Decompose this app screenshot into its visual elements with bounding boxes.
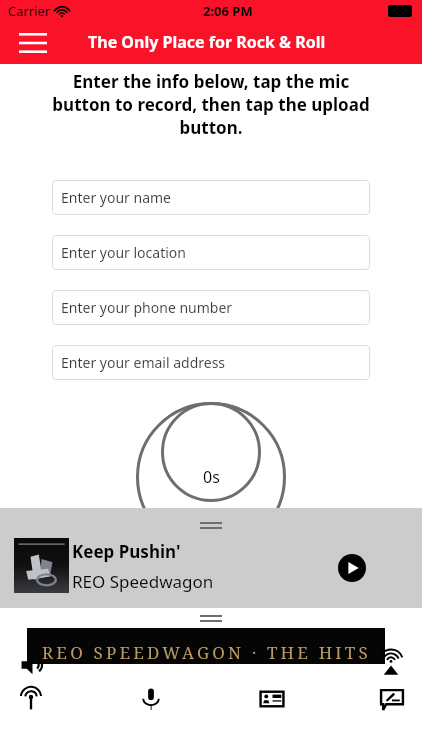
staticText: 0s bbox=[203, 466, 220, 488]
button[interactable]: Compose bbox=[375, 682, 409, 716]
button[interactable]: Record bbox=[134, 682, 168, 716]
staticText: REO Speedwagon bbox=[72, 570, 214, 593]
button[interactable]: Broadcast bbox=[14, 682, 48, 716]
button[interactable]: Contact bbox=[255, 682, 289, 716]
button[interactable]: Enter your name bbox=[52, 180, 370, 215]
staticText: REO SPEEDWAGON · THE HITS bbox=[42, 641, 371, 664]
button[interactable]: Play bbox=[338, 554, 366, 582]
staticText: The Only Place for Rock & Roll bbox=[88, 31, 326, 53]
staticText: 2:06 PM bbox=[203, 2, 253, 20]
button[interactable]: Record timer bbox=[136, 402, 286, 552]
button[interactable]: Volume bbox=[16, 648, 50, 682]
staticText: Enter your phone number bbox=[61, 298, 233, 317]
button[interactable]: Enter your email address bbox=[52, 345, 370, 380]
staticText: Enter your location bbox=[61, 243, 186, 262]
staticText: Enter your email address bbox=[61, 353, 226, 372]
staticText: Keep Pushin' bbox=[72, 540, 181, 563]
button[interactable]: AirPlay bbox=[374, 646, 408, 680]
button[interactable]: Enter your location bbox=[52, 235, 370, 270]
button[interactable]: Enter your phone number bbox=[52, 290, 370, 325]
staticText: Enter your name bbox=[61, 188, 171, 207]
staticText: Carrier bbox=[8, 2, 51, 20]
staticText: Enter the info below, tap the mic button… bbox=[42, 70, 380, 139]
button[interactable]: Menu bbox=[16, 28, 50, 58]
